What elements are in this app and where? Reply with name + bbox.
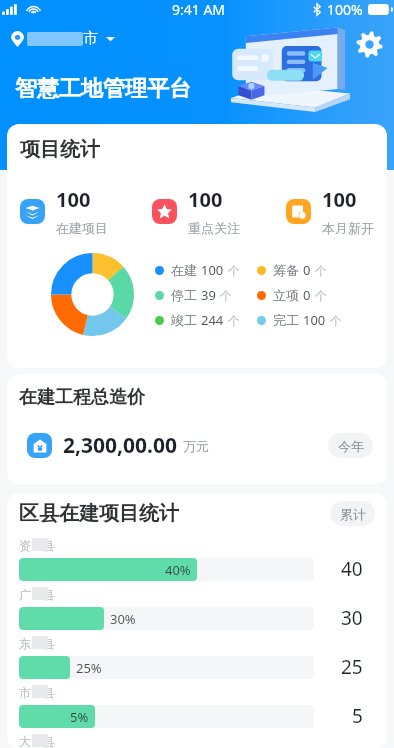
- staticText: 100: [322, 186, 357, 213]
- staticText: 竣工: [171, 312, 197, 328]
- button[interactable]: 市: [8, 27, 119, 50]
- staticText: 9:41 AM: [172, 0, 226, 18]
- staticText: 个: [228, 313, 240, 328]
- staticText: 100: [188, 186, 223, 213]
- staticText: 个: [228, 263, 240, 278]
- staticText: 100%: [327, 0, 363, 18]
- staticText: 本月新开: [322, 220, 374, 236]
- staticText: 30: [341, 605, 363, 631]
- staticText: 个: [315, 263, 327, 278]
- staticText: 个: [220, 288, 232, 303]
- staticText: 完工: [273, 312, 299, 328]
- staticText: 25: [341, 654, 363, 680]
- staticText: 244: [201, 311, 224, 329]
- staticText: 停工: [171, 287, 197, 303]
- staticText: 东 县: [19, 635, 55, 651]
- staticText: 资 县: [19, 537, 55, 553]
- button[interactable]: 累计: [330, 501, 375, 526]
- staticText: 市: [83, 29, 98, 48]
- staticText: 智慧工地管理平台: [15, 75, 191, 103]
- staticText: 万元: [183, 438, 209, 454]
- staticText: 100: [303, 311, 326, 329]
- staticText: 个: [315, 288, 327, 303]
- staticText: 100: [56, 186, 91, 213]
- staticText: 在建工程总造价: [19, 386, 145, 409]
- staticText: 区县在建项目统计: [19, 501, 179, 526]
- staticText: 在建: [171, 262, 197, 278]
- staticText: 大 县: [19, 733, 55, 748]
- staticText: 在建项目: [56, 220, 108, 236]
- staticText: 项目统计: [20, 137, 100, 162]
- staticText: 累计: [340, 506, 366, 522]
- staticText: 5: [352, 703, 363, 729]
- staticText: 0: [303, 286, 311, 304]
- staticText: 40: [341, 556, 363, 582]
- staticText: 立项: [273, 287, 299, 303]
- staticText: 40%: [165, 561, 191, 579]
- staticText: 筹备: [273, 262, 299, 278]
- staticText: 39: [201, 286, 216, 304]
- staticText: 广 县: [19, 586, 55, 602]
- staticText: 100: [201, 261, 224, 279]
- staticText: 25%: [76, 659, 102, 677]
- staticText: 重点关注: [188, 220, 240, 236]
- staticText: 市 县: [19, 684, 55, 700]
- staticText: 个: [330, 313, 342, 328]
- staticText: 2,300,00.00: [63, 431, 177, 460]
- button[interactable]: Settings: [349, 24, 389, 64]
- staticText: 5%: [70, 708, 89, 726]
- button[interactable]: 今年: [328, 433, 373, 458]
- staticText: 0: [303, 261, 311, 279]
- staticText: 今年: [338, 438, 364, 454]
- staticText: 30%: [110, 610, 136, 628]
